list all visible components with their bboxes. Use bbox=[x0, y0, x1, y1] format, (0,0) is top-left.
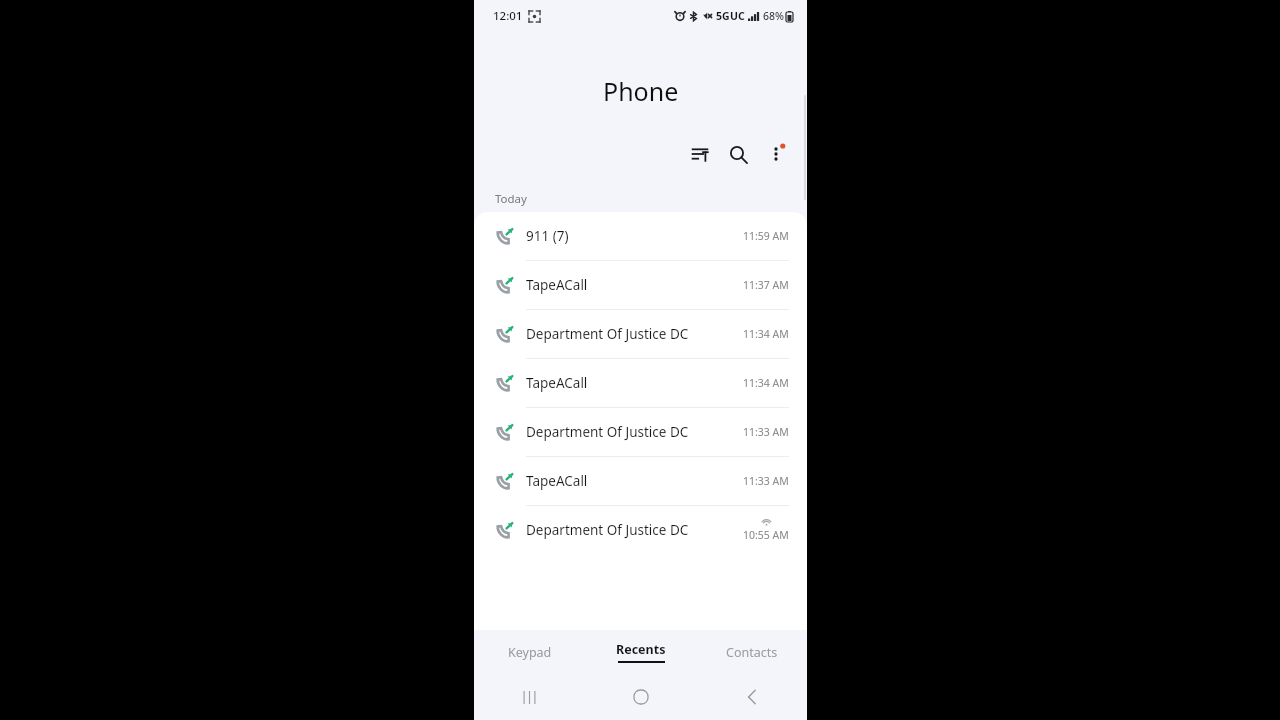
staticText: Contacts bbox=[726, 644, 778, 661]
staticText: TapeACall bbox=[526, 472, 588, 490]
button[interactable]: More options bbox=[757, 135, 795, 173]
button[interactable]: Keypad bbox=[474, 630, 585, 674]
staticText: 11:33 AM bbox=[743, 425, 789, 439]
button[interactable]: Department Of Justice DC bbox=[474, 506, 807, 554]
button[interactable]: Recents bbox=[585, 630, 696, 674]
button[interactable]: TapeACall bbox=[474, 457, 807, 506]
staticText: Department Of Justice DC bbox=[526, 325, 689, 343]
staticText: Phone bbox=[603, 74, 679, 108]
button[interactable]: TapeACall bbox=[474, 261, 807, 310]
button[interactable]: Recent apps bbox=[474, 674, 585, 720]
staticText: Today bbox=[495, 191, 527, 207]
button[interactable]: Contacts bbox=[696, 630, 807, 674]
staticText: 11:37 AM bbox=[743, 278, 789, 292]
button[interactable]: 911 (7) bbox=[474, 212, 807, 261]
button[interactable]: TapeACall bbox=[474, 359, 807, 408]
staticText: 11:59 AM bbox=[743, 229, 789, 243]
staticText: 11:34 AM bbox=[743, 376, 789, 390]
staticText: Recents bbox=[616, 641, 666, 658]
button[interactable]: Department Of Justice DC bbox=[474, 310, 807, 359]
staticText: 911 (7) bbox=[526, 227, 569, 245]
staticText: Keypad bbox=[508, 644, 552, 661]
staticText: 68% bbox=[763, 9, 784, 23]
button[interactable]: Back bbox=[696, 674, 807, 720]
staticText: 12:01 bbox=[493, 8, 523, 24]
button[interactable]: Sort bbox=[681, 135, 719, 173]
staticText: 11:33 AM bbox=[743, 474, 789, 488]
staticText: Department Of Justice DC bbox=[526, 423, 689, 441]
staticText: 5G bbox=[716, 9, 730, 23]
button[interactable]: Search bbox=[719, 135, 757, 173]
button[interactable]: Home bbox=[585, 674, 696, 720]
staticText: TapeACall bbox=[526, 374, 588, 392]
staticText: TapeACall bbox=[526, 276, 588, 294]
staticText: 10:55 AM bbox=[743, 528, 789, 542]
staticText: Department Of Justice DC bbox=[526, 521, 689, 539]
button[interactable]: Department Of Justice DC bbox=[474, 408, 807, 457]
staticText: 11:34 AM bbox=[743, 327, 789, 341]
staticText: UC bbox=[730, 9, 745, 23]
